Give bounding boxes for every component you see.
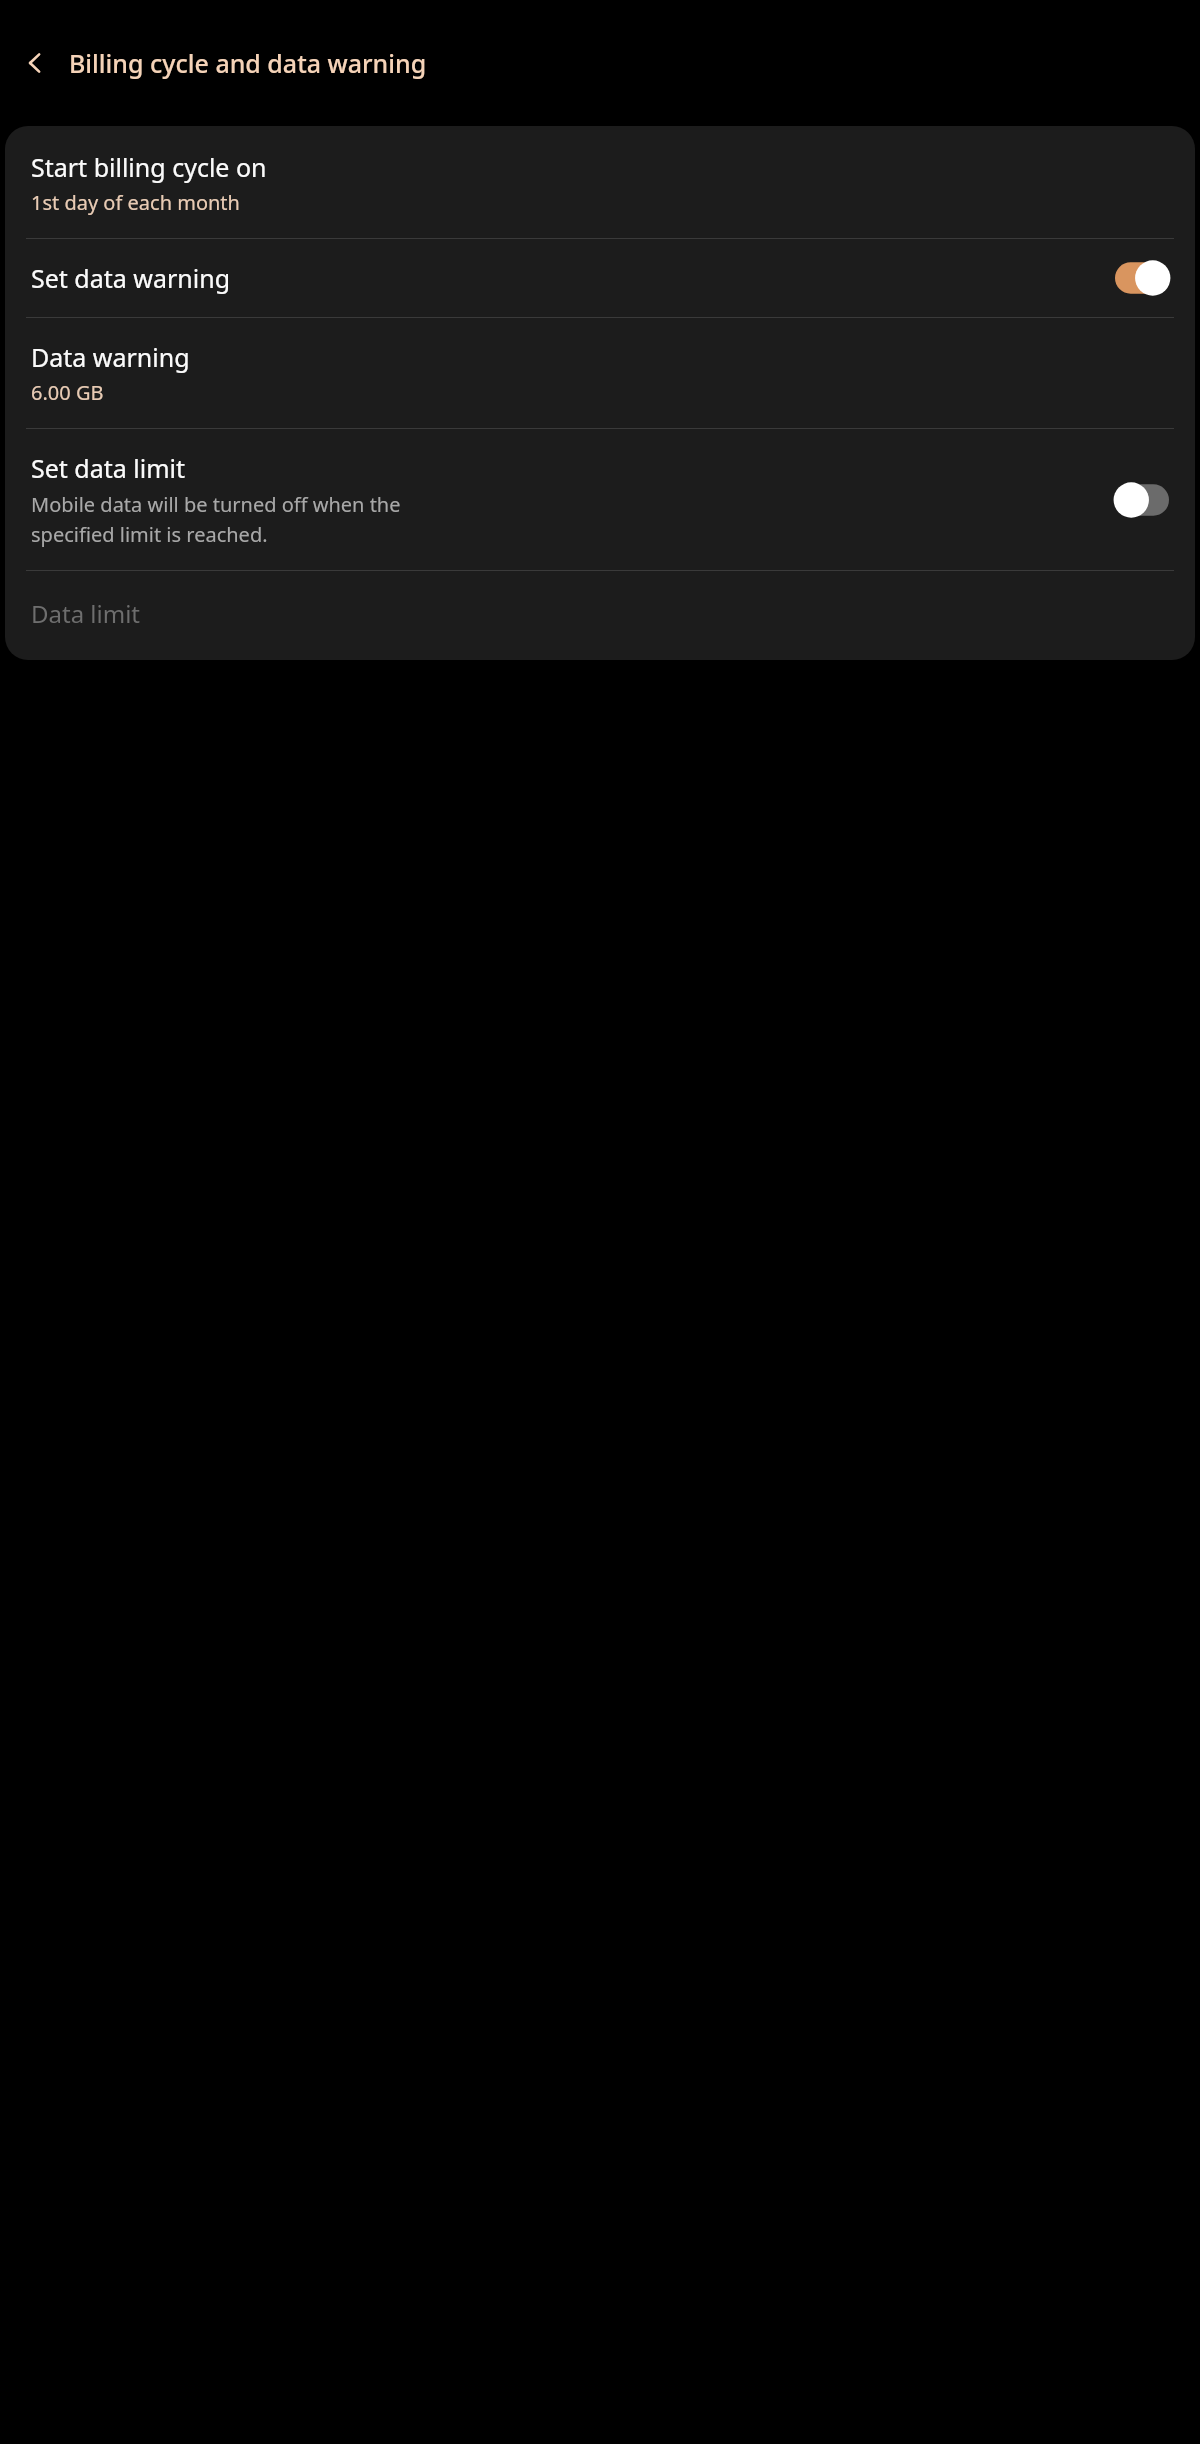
staticText: Mobile data will be turned off when the … bbox=[31, 491, 401, 548]
staticText: Billing cycle and data warning bbox=[69, 46, 427, 80]
button[interactable]: Start billing cycle on bbox=[5, 126, 1195, 238]
staticText: Set data warning bbox=[31, 261, 231, 295]
button[interactable]: Toggle on bbox=[1115, 261, 1169, 295]
button[interactable]: Set data limit bbox=[5, 429, 1195, 570]
button[interactable]: Data warning bbox=[5, 318, 1195, 428]
staticText: Start billing cycle on bbox=[31, 150, 267, 184]
button[interactable]: Toggle off bbox=[1115, 483, 1169, 517]
staticText: Data limit bbox=[31, 597, 141, 630]
button[interactable]: Back bbox=[13, 41, 57, 85]
button[interactable]: Data limit bbox=[5, 571, 1195, 660]
staticText: Set data limit bbox=[31, 451, 186, 485]
staticText: 6.00 GB bbox=[31, 379, 104, 406]
button[interactable]: Set data warning bbox=[5, 239, 1195, 317]
staticText: Data warning bbox=[31, 340, 190, 374]
staticText: 1st day of each month bbox=[31, 189, 240, 216]
